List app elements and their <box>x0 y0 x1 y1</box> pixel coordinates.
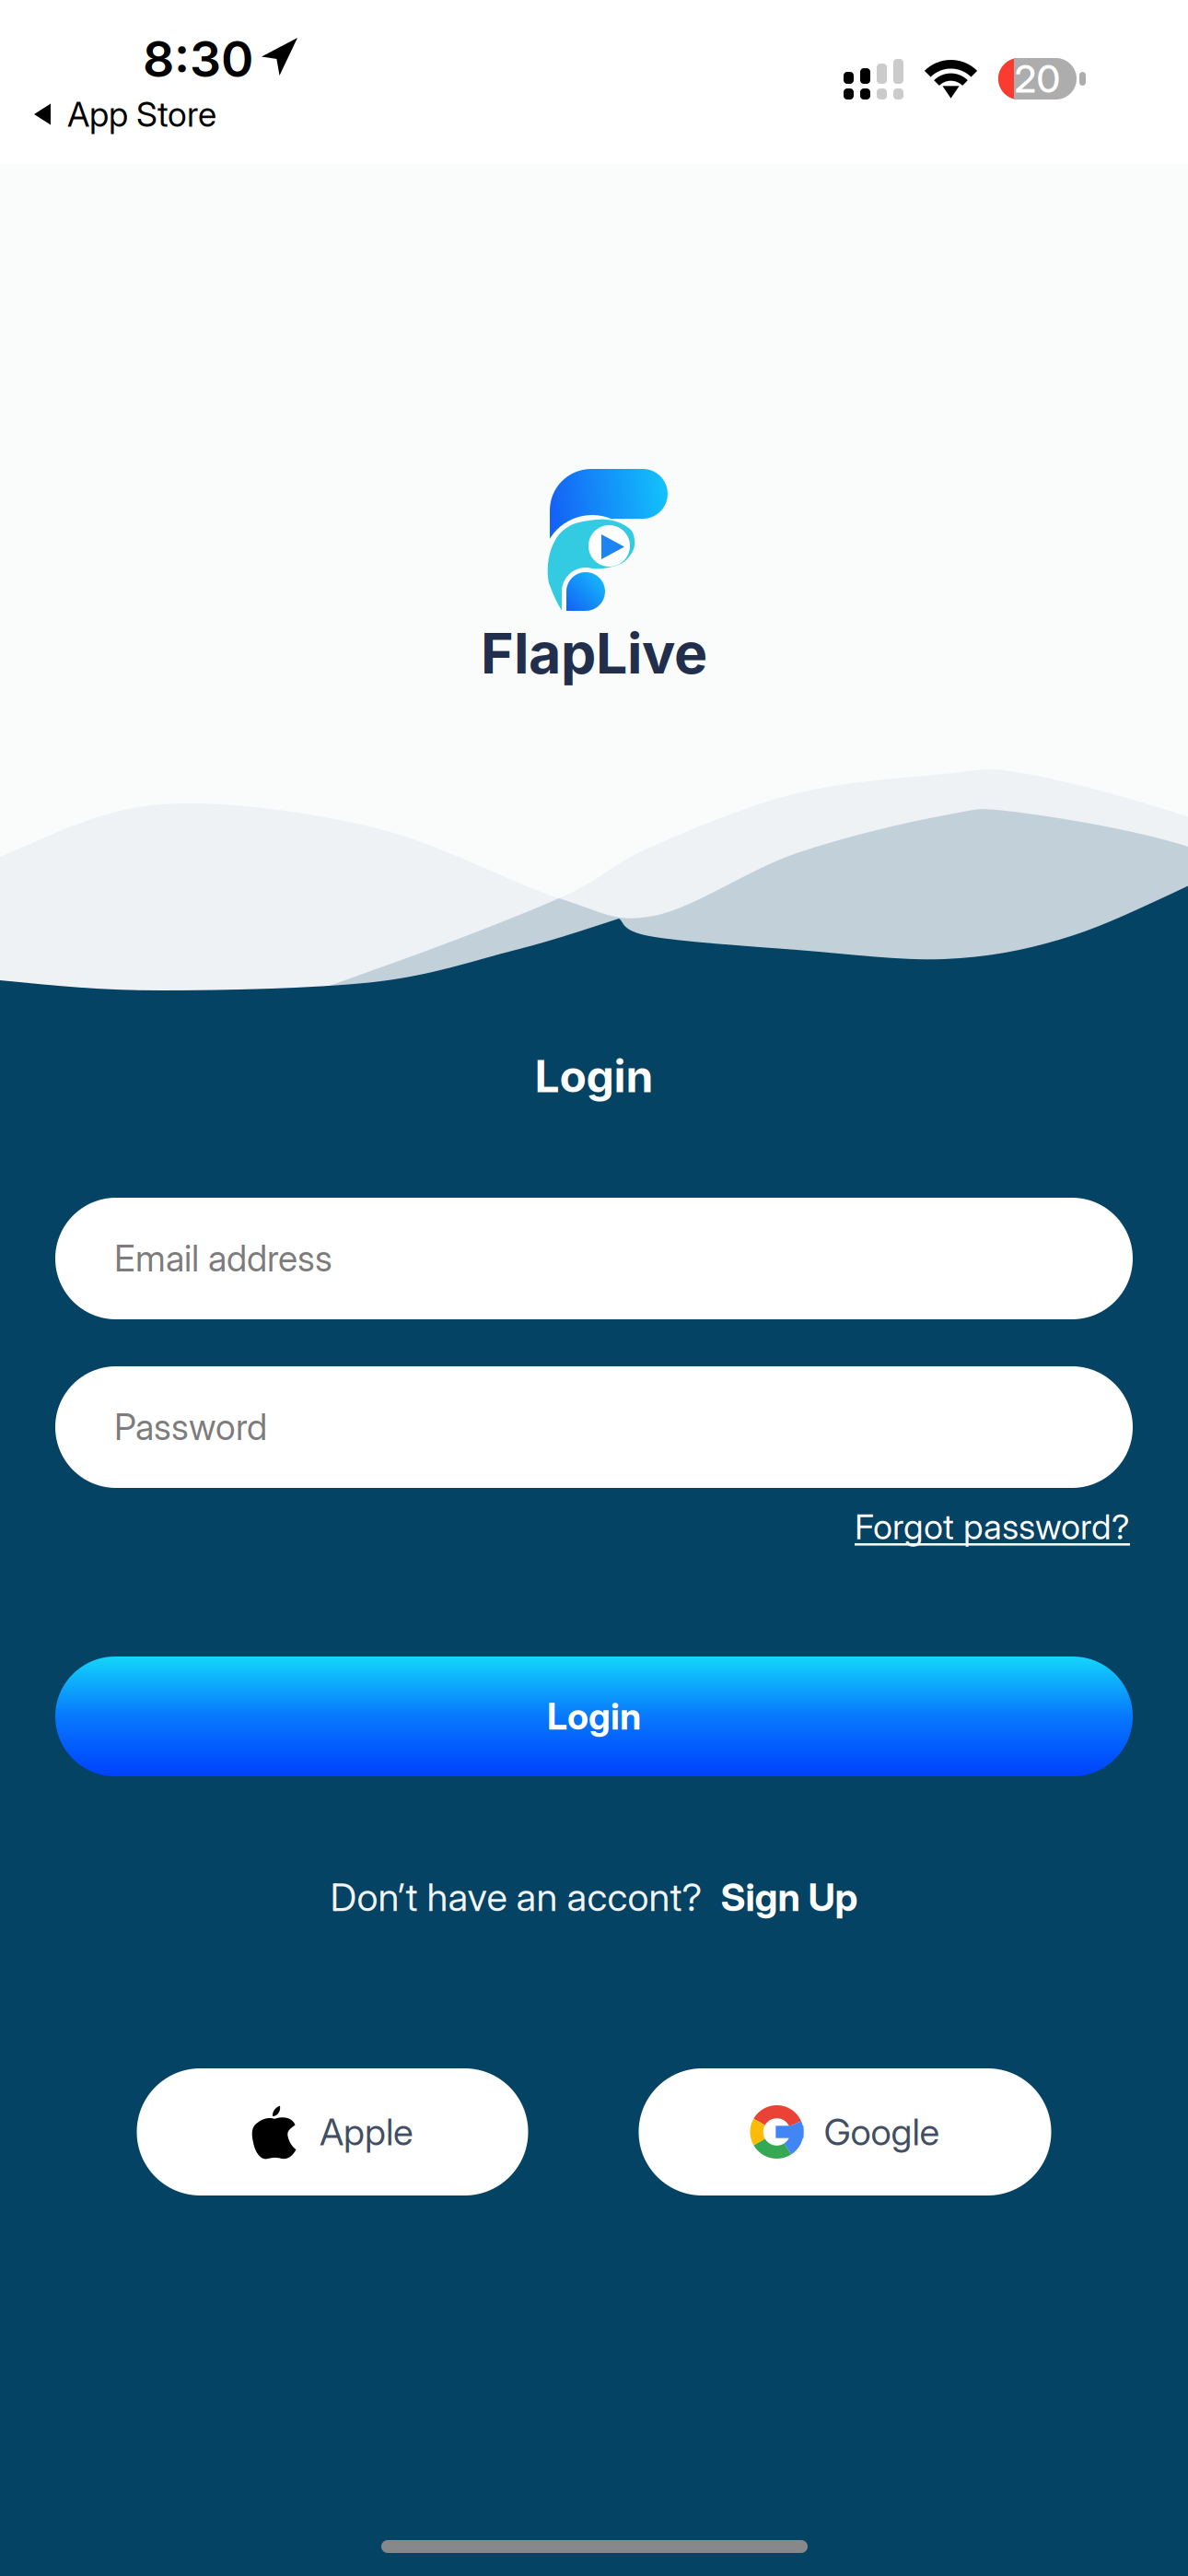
button[interactable]: Password <box>55 1366 1133 1488</box>
staticText: Login <box>535 1049 653 1103</box>
staticText: Password <box>114 1406 267 1449</box>
staticText: Apple <box>320 2110 413 2154</box>
button[interactable]: Email address <box>55 1198 1133 1319</box>
staticText: Forgot password? <box>855 1506 1130 1548</box>
staticText: 20 <box>1014 56 1060 102</box>
button[interactable]: Login <box>55 1657 1133 1776</box>
button[interactable]: App Store <box>34 91 216 137</box>
staticText: Login <box>547 1694 641 1738</box>
staticText: Don’t have an accont? <box>330 1874 702 1920</box>
staticText: 8:30 <box>143 29 253 89</box>
button[interactable]: Google <box>639 2068 1051 2195</box>
staticText: Google <box>824 2110 940 2154</box>
staticText: App Store <box>67 94 216 135</box>
button[interactable]: Sign Up <box>721 1874 858 1920</box>
staticText: Email address <box>114 1237 332 1280</box>
button[interactable]: Forgot password? <box>743 1498 1130 1555</box>
button[interactable]: Apple <box>137 2068 528 2195</box>
staticText: FlapLive <box>481 619 707 687</box>
staticText: Sign Up <box>721 1874 858 1920</box>
